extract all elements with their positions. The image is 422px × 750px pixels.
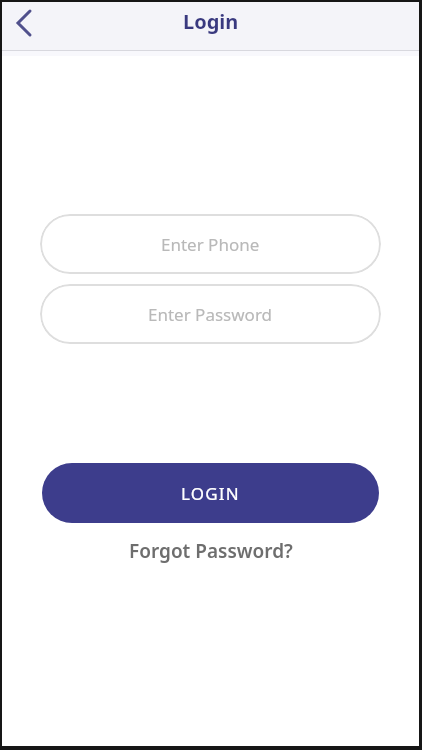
button[interactable]: Forgot Password?: [129, 538, 293, 564]
staticText: Login: [183, 8, 239, 35]
button[interactable]: Enter Password: [40, 284, 381, 344]
button[interactable]: LOGIN: [42, 463, 379, 523]
staticText: Enter Password: [148, 303, 273, 326]
staticText: LOGIN: [181, 482, 240, 505]
button[interactable]: Enter Phone: [40, 214, 381, 274]
staticText: Enter Phone: [161, 233, 260, 256]
button[interactable]: [6, 5, 42, 41]
